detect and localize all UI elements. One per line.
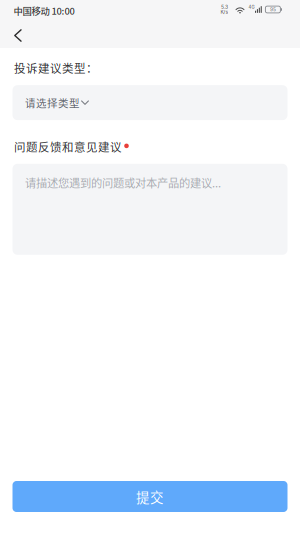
button[interactable]: Back [0,19,46,48]
staticText: 95 [270,6,276,12]
staticText: 5.3 [221,4,228,10]
button[interactable]: 提交 [12,481,287,512]
staticText: 投诉建议类型： [14,59,98,76]
staticText: 提交 [136,487,164,506]
staticText: K/s [220,9,228,15]
staticText: 中国移动 10:00 [13,4,74,17]
staticText: 请选择类型 [25,95,80,110]
staticText: 请描述您遇到的问题或对本产品的建议... [25,174,221,191]
button[interactable]: 请选择类型 [12,85,287,120]
staticText: 4G [248,5,254,10]
staticText: 问题反馈和意见建议 [14,138,122,155]
